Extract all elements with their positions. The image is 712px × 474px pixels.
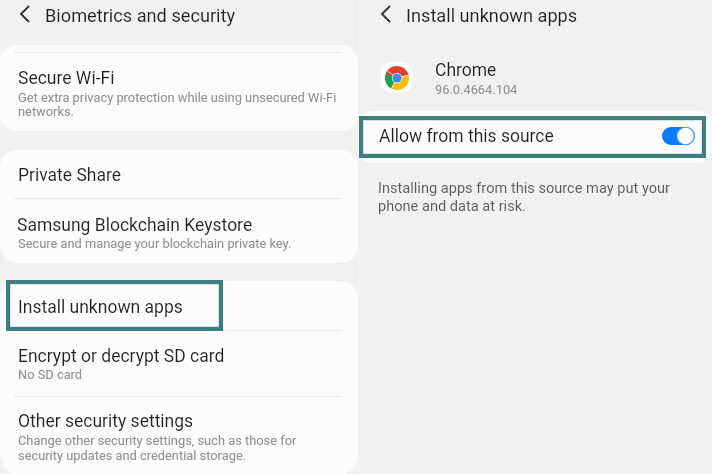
- staticText: No SD card: [18, 367, 83, 382]
- staticText: Get extra privacy protection while using…: [18, 90, 337, 119]
- staticText: Allow from this source: [379, 126, 554, 147]
- staticText: Encrypt or decrypt SD card: [18, 346, 225, 367]
- staticText: Install unknown apps: [18, 297, 183, 318]
- staticText: Secure and manage your blockchain privat…: [18, 236, 292, 251]
- staticText: Chrome: [435, 60, 497, 81]
- button[interactable]: Navigate up: [374, 1, 398, 27]
- staticText: Secure Wi-Fi: [18, 68, 115, 89]
- button[interactable]: Encrypt or decrypt SD card: [0, 331, 358, 396]
- button[interactable]: Navigate up: [13, 1, 37, 27]
- staticText: Biometrics and security: [45, 5, 236, 26]
- button[interactable]: Private Share: [0, 150, 358, 198]
- staticText: 96.0.4664.104: [435, 82, 518, 97]
- button[interactable]: Install unknown apps: [0, 281, 358, 330]
- staticText: Private Share: [18, 165, 122, 186]
- button[interactable]: Other security settings: [0, 397, 358, 474]
- staticText: Installing apps from this source may put…: [378, 179, 671, 215]
- button[interactable]: Samsung Blockchain Keystore: [0, 199, 358, 263]
- staticText: Samsung Blockchain Keystore: [17, 215, 253, 236]
- button[interactable]: Allow from this source: [358, 111, 712, 163]
- other: Allow from this source toggle, on: [662, 126, 695, 146]
- button[interactable]: Secure Wi-Fi: [0, 45, 358, 131]
- staticText: Install unknown apps: [406, 5, 578, 26]
- staticText: Other security settings: [18, 411, 194, 432]
- staticText: Change other security settings, such as …: [18, 433, 297, 463]
